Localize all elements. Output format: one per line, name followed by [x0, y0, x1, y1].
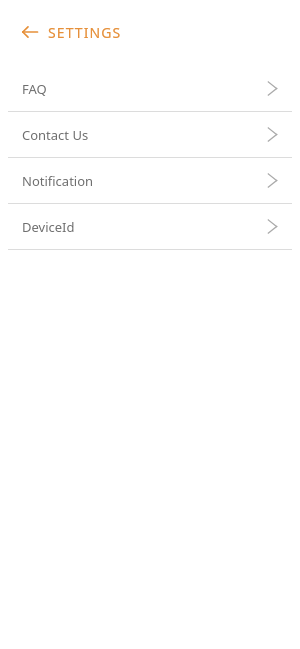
- button[interactable]: Contact Us: [0, 112, 300, 157]
- button[interactable]: Notification: [0, 158, 300, 203]
- staticText: FAQ: [22, 80, 47, 98]
- staticText: DeviceId: [22, 218, 75, 236]
- button[interactable]: FAQ: [0, 66, 300, 111]
- staticText: Contact Us: [22, 126, 89, 144]
- staticText: Notification: [22, 172, 94, 190]
- button[interactable]: Back: [18, 20, 42, 44]
- staticText: SETTINGS: [48, 23, 122, 42]
- button[interactable]: DeviceId: [0, 204, 300, 249]
